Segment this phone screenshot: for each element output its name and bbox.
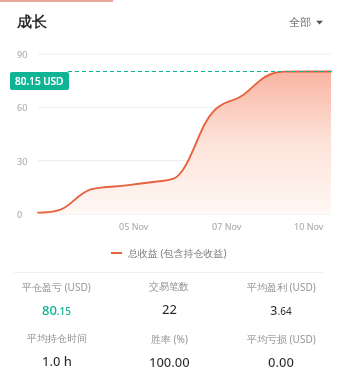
staticText: 成长 [17, 13, 47, 32]
staticText: 平仓盈亏 (USD) [22, 280, 91, 294]
button[interactable]: 80.15 USD [10, 72, 69, 90]
staticText: 80.15 [42, 301, 72, 319]
button[interactable]: 平仓盈亏 (USD) [0, 273, 113, 325]
staticText: 平均盈利 (USD) [247, 280, 316, 294]
staticText: 60 [17, 101, 28, 113]
staticText: 0.00 [268, 353, 294, 371]
staticText: 3.64 [270, 301, 292, 319]
button[interactable]: 平均盈利 (USD) [225, 273, 337, 325]
staticText: 90 [17, 48, 28, 60]
staticText: 0 [17, 208, 23, 220]
button[interactable]: 交易笔数 [113, 273, 225, 325]
staticText: 全部 [289, 15, 311, 29]
staticText: 平均亏损 (USD) [247, 332, 316, 346]
staticText: 22 [162, 300, 177, 318]
staticText: 100.00 [149, 353, 190, 371]
staticText: 07 Nov [212, 220, 242, 232]
button[interactable]: 平均持仓时间 [0, 325, 113, 377]
staticText: 05 Nov [119, 220, 149, 232]
button[interactable]: 全部 [279, 9, 337, 35]
staticText: 总收益 (包含持仓收益) [128, 246, 227, 260]
staticText: 交易笔数 [149, 280, 189, 293]
staticText: 30 [17, 155, 28, 167]
staticText: 平均持仓时间 [27, 332, 87, 345]
staticText: 80.15 USD [15, 74, 64, 88]
button[interactable]: 胜率 (%) [113, 325, 225, 377]
staticText: 胜率 (%) [151, 332, 188, 346]
staticText: 10 Nov [294, 220, 324, 232]
staticText: 1.0 h [42, 352, 72, 370]
button[interactable]: 平均亏损 (USD) [225, 325, 337, 377]
